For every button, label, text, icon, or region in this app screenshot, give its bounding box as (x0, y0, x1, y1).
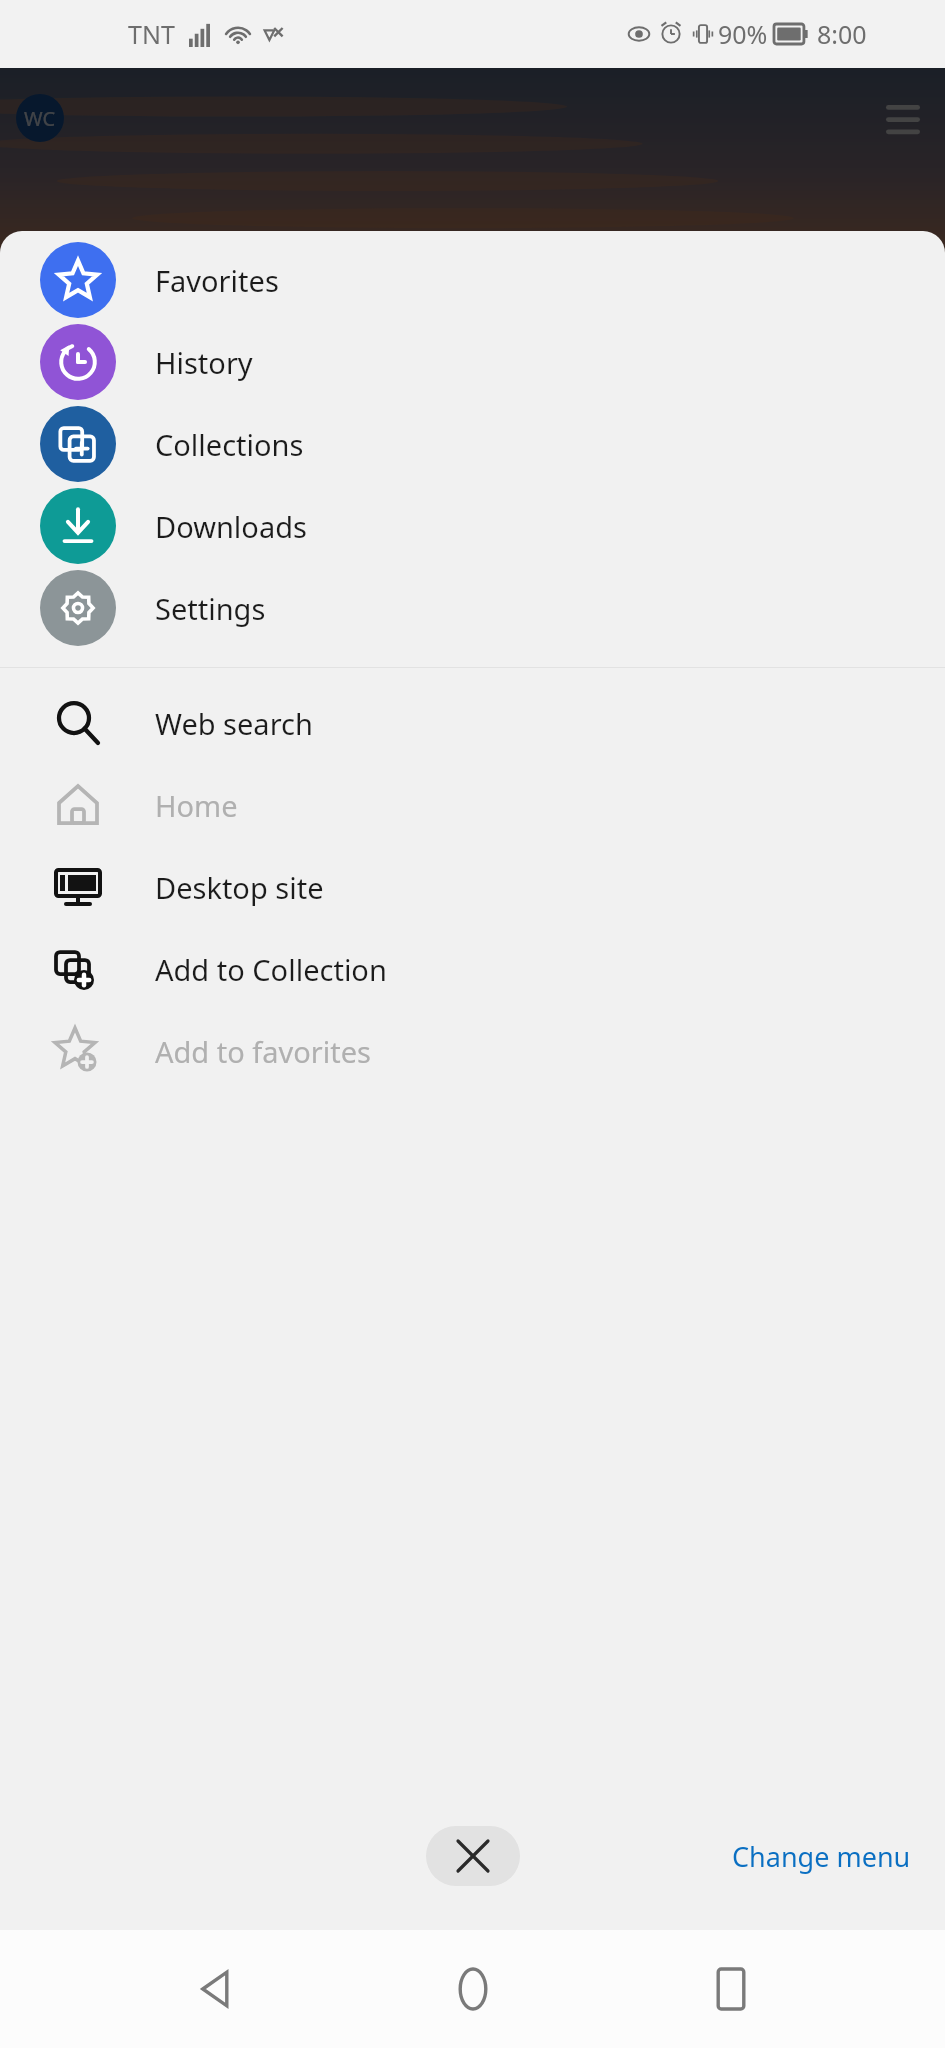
staticText: Home (155, 786, 238, 825)
staticText: Desktop site (155, 868, 324, 907)
button[interactable]: Account (16, 94, 64, 142)
button[interactable]: Close (426, 1826, 520, 1886)
staticText: Downloads (155, 507, 307, 546)
button[interactable]: Menu (875, 94, 931, 150)
button[interactable]: Back (169, 1944, 259, 2034)
button[interactable]: Recents (686, 1944, 776, 2034)
button[interactable]: Favorites (0, 239, 945, 321)
staticText: Add to Collection (155, 950, 387, 989)
staticText: Change menu (732, 1838, 911, 1875)
staticText: Search or enter web address (71, 526, 434, 563)
button[interactable]: Collections (0, 403, 945, 485)
button[interactable]: Web search (0, 682, 945, 764)
staticText: 8:00 (817, 17, 867, 51)
staticText: Settings (155, 589, 266, 628)
button[interactable]: Settings (0, 567, 945, 649)
staticText: Favorites (155, 261, 279, 300)
button[interactable]: Change menu (718, 1826, 925, 1887)
staticText: History (155, 343, 253, 382)
staticText: Web search (155, 704, 313, 743)
button[interactable]: Home (428, 1944, 518, 2034)
button[interactable]: Desktop site (0, 846, 945, 928)
button[interactable]: Home (0, 764, 945, 846)
staticText: Collections (155, 425, 304, 464)
button[interactable]: Search or enter web address (43, 500, 902, 588)
button[interactable]: Add to Collection (0, 928, 945, 1010)
button[interactable]: Add to favorites (0, 1010, 945, 1092)
staticText: Add to favorites (155, 1032, 371, 1071)
staticText: WC (24, 105, 56, 132)
staticText: 90% (718, 17, 768, 51)
staticText: TNT (128, 17, 175, 51)
button[interactable]: History (0, 321, 945, 403)
button[interactable]: Downloads (0, 485, 945, 567)
